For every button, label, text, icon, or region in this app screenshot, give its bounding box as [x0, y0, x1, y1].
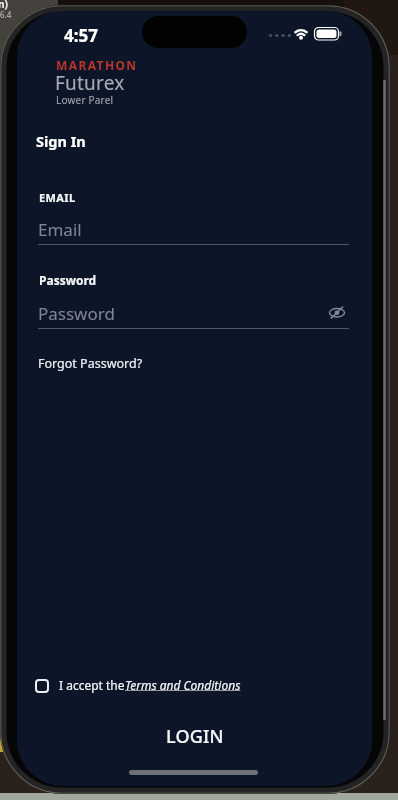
staticText: LOGIN: [166, 724, 224, 749]
button[interactable]: [328, 305, 348, 322]
staticText: EMAIL: [39, 190, 76, 205]
staticText: Lower Parel: [56, 93, 114, 107]
staticText: Email: [38, 218, 82, 241]
staticText: I accept the: [59, 677, 125, 693]
staticText: n): [0, 0, 8, 11]
staticText: Sign In: [36, 131, 86, 151]
staticText: Password: [38, 302, 115, 325]
button[interactable]: Email: [38, 215, 349, 245]
staticText: Terms and Conditions: [125, 677, 241, 693]
staticText: MARATHON: [56, 57, 138, 73]
staticText: 4:57: [64, 24, 98, 47]
staticText: Password: [39, 272, 97, 288]
staticText: Futurex: [55, 70, 125, 96]
button[interactable]: Password: [38, 299, 349, 329]
button[interactable]: I accept the: [35, 677, 241, 693]
button[interactable]: Forgot Password?: [36, 352, 141, 369]
staticText: 6.4: [0, 9, 12, 20]
button[interactable]: LOGIN: [16, 718, 373, 754]
staticText: Forgot Password?: [38, 355, 143, 372]
